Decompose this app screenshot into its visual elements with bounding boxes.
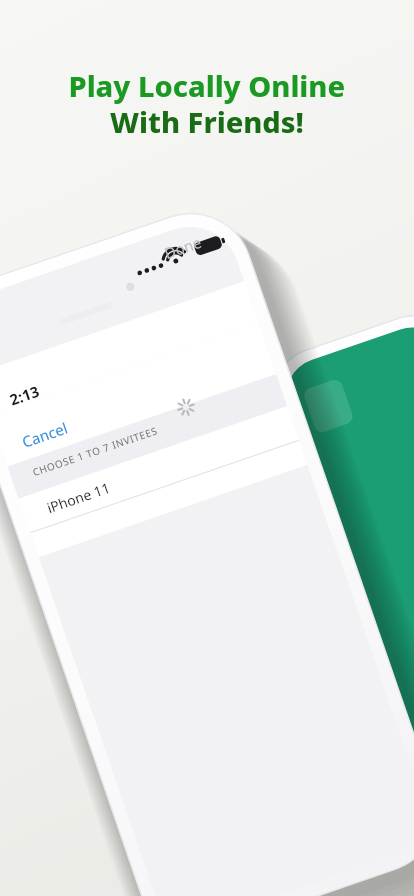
button[interactable]: Play Locally Online With Friends promo: [0, 0, 414, 896]
